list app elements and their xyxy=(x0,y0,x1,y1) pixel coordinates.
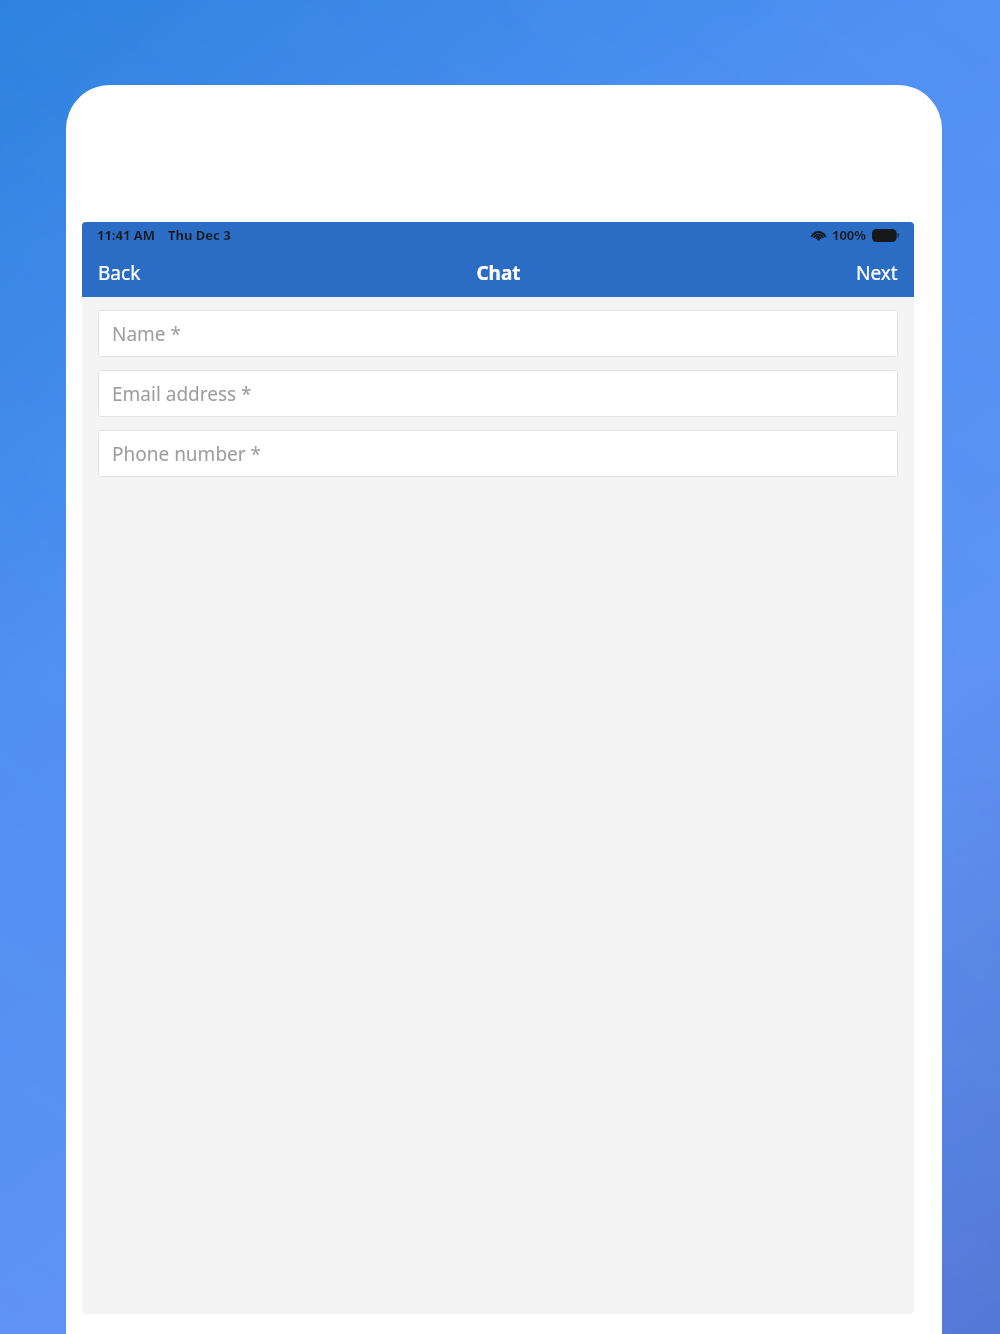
button[interactable]: Next xyxy=(840,252,914,294)
button[interactable]: Back xyxy=(82,252,157,294)
button[interactable]: Phone number * xyxy=(98,430,898,477)
staticText: Thu Dec 3 xyxy=(168,226,231,244)
button[interactable]: Email address * xyxy=(98,370,898,417)
staticText: Chat xyxy=(476,260,521,286)
staticText: 100% xyxy=(832,226,867,244)
staticText: 11:41 AM xyxy=(97,226,156,244)
staticText: Name * xyxy=(112,321,181,347)
staticText: Next xyxy=(856,260,898,286)
button[interactable]: Name * xyxy=(98,310,898,357)
staticText: Email address * xyxy=(112,381,252,407)
staticText: Back xyxy=(98,260,141,286)
staticText: Phone number * xyxy=(112,441,262,467)
